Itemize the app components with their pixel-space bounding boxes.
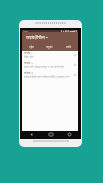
staticText: ▮ ▲ ▮▮ ▮ ▄▅▆ ▮ <box>61 30 77 32</box>
button[interactable]: Back <box>22 130 41 139</box>
button[interactable]: অনুবাদ <box>40 42 59 51</box>
staticText: ব্যাখ্যা <box>66 46 72 49</box>
button[interactable]: অধ্যায় ১ <box>22 51 78 59</box>
button[interactable]: Bookmark <box>72 52 77 57</box>
button[interactable]: Bookmark <box>72 72 77 77</box>
staticText: বিষাদ যোগ <box>24 55 34 59</box>
button[interactable]: Home <box>41 130 60 139</box>
staticText: অনুবাদ <box>46 46 53 49</box>
button[interactable]: Bookmark <box>72 62 77 67</box>
staticText: অধ্যায় ৩ <box>24 70 33 74</box>
button[interactable]: শ্লোক <box>22 42 40 51</box>
button[interactable]: অধ্যায় ৩ <box>22 69 78 79</box>
staticText: কর্মযোগ নিষ্কাম কর্ম সম্পাদনের বিধি ও ফল… <box>24 75 70 79</box>
staticText: অধ্যায় নির্বাচন – <box>26 34 48 40</box>
staticText: অধ্যায় ১ <box>24 51 33 54</box>
staticText: ১২:৩৫ <box>23 30 28 32</box>
button[interactable]: Recents <box>60 130 79 139</box>
staticText: সাংখ্য যোগ আত্মার অমরত্ব ও দেহ নাশের কথা <box>24 65 64 69</box>
staticText: অধ্যায় ২ <box>24 60 33 64</box>
staticText: শ্লোক <box>29 46 34 49</box>
button[interactable]: ব্যাখ্যা <box>59 42 78 51</box>
button[interactable]: অধ্যায় ২ <box>22 59 78 69</box>
